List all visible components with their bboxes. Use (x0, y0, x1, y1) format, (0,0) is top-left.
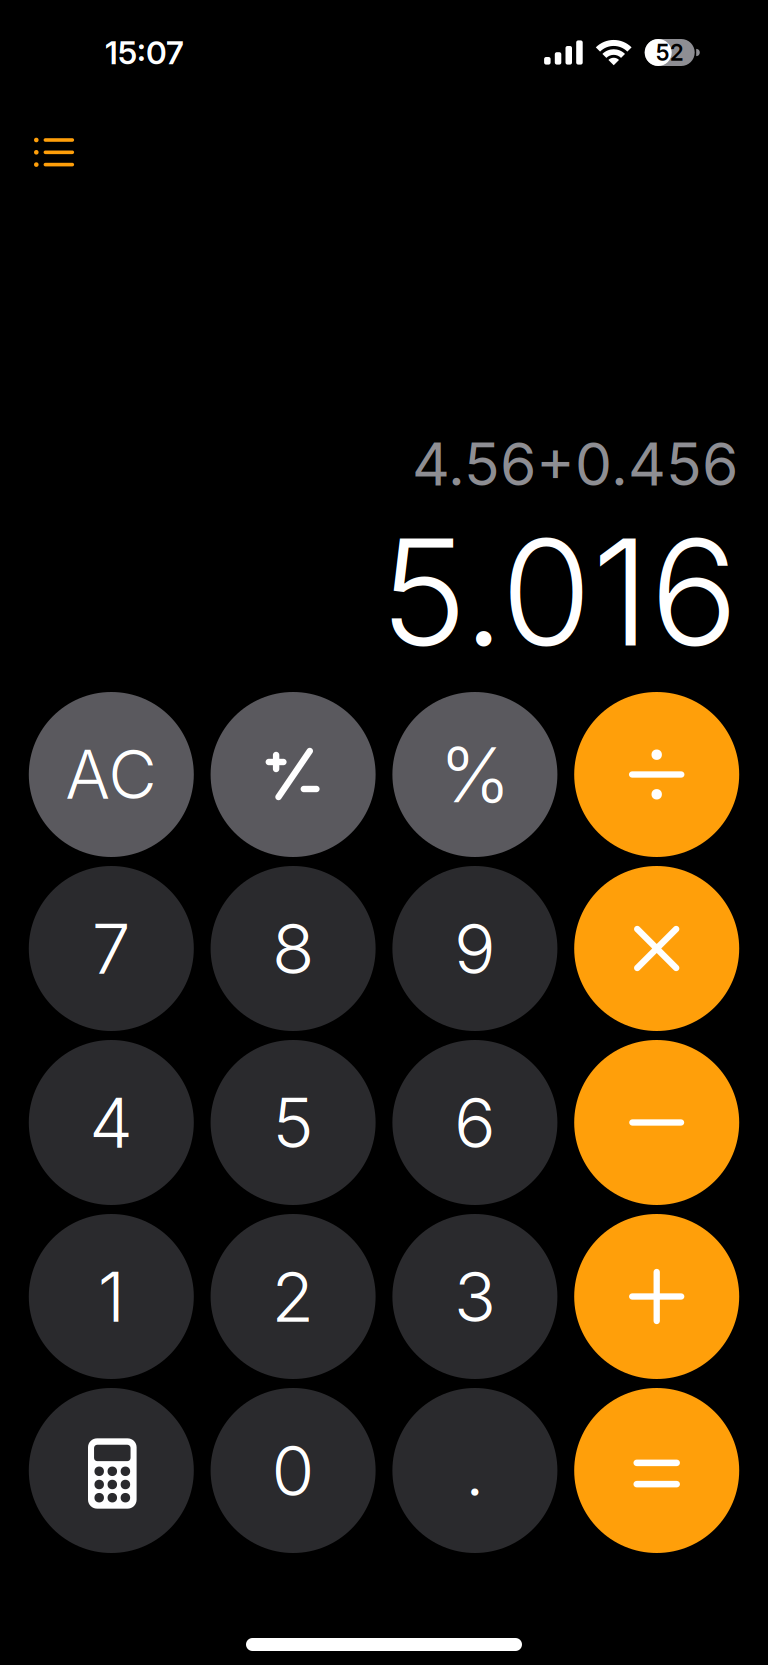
button[interactable]: 4 (29, 1040, 194, 1205)
staticText: 9 (454, 907, 496, 990)
button[interactable]: Divide (574, 692, 739, 857)
button[interactable]: Plus (574, 1214, 739, 1379)
staticText: 15:07 (105, 33, 184, 72)
staticText: 0 (272, 1429, 315, 1512)
staticText: 3 (454, 1255, 496, 1338)
staticText: % (439, 728, 510, 820)
staticText: 1 (98, 1255, 125, 1338)
button[interactable]: Plus Minus (211, 692, 376, 857)
button[interactable]: Equals (574, 1388, 739, 1553)
button[interactable]: 5 (211, 1040, 376, 1205)
button[interactable]: . (392, 1388, 557, 1553)
staticText: 52 (656, 39, 684, 66)
button[interactable]: 8 (211, 866, 376, 1031)
button[interactable]: Minus (574, 1040, 739, 1205)
button[interactable]: Calculator Modes (29, 1388, 194, 1553)
button[interactable]: 2 (211, 1214, 376, 1379)
staticText: 8 (272, 907, 314, 990)
staticText: 7 (92, 907, 131, 990)
button[interactable]: 0 (211, 1388, 376, 1553)
button[interactable]: Multiply (574, 866, 739, 1031)
staticText: 5 (273, 1081, 314, 1164)
button[interactable]: % (392, 692, 557, 857)
button[interactable]: 6 (392, 1040, 557, 1205)
button[interactable]: 9 (392, 866, 557, 1031)
staticText: 4.56+0.456 (412, 429, 738, 500)
button[interactable]: History (16, 122, 92, 183)
button[interactable]: 1 (29, 1214, 194, 1379)
button[interactable]: 7 (29, 866, 194, 1031)
staticText: 5.016 (380, 503, 738, 681)
staticText: 4 (89, 1081, 133, 1164)
staticText: 6 (454, 1081, 496, 1164)
staticText: . (465, 1429, 485, 1512)
staticText: 2 (272, 1255, 315, 1338)
button[interactable]: 3 (392, 1214, 557, 1379)
staticText: AC (65, 734, 157, 815)
button[interactable]: AC (29, 692, 194, 857)
